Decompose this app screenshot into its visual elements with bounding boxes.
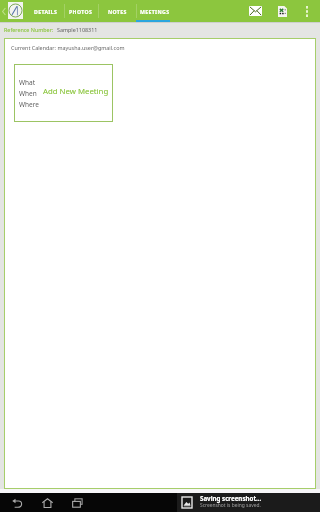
button[interactable]: Back bbox=[0, 0, 8, 22]
staticText: Reference Number: bbox=[4, 26, 54, 33]
staticText: Current Calendar: mayusha.user@gmail.com bbox=[11, 44, 125, 51]
staticText: Sample1108311 bbox=[57, 26, 98, 33]
staticText: NOTES bbox=[108, 8, 127, 15]
staticText: Where bbox=[19, 100, 39, 109]
button[interactable]: Add New Meeting bbox=[43, 86, 109, 97]
staticText: MEETINGS bbox=[140, 8, 170, 15]
button[interactable]: MEETINGS bbox=[136, 0, 174, 22]
staticText: When bbox=[19, 89, 37, 98]
button[interactable]: Home bbox=[37, 493, 57, 512]
button[interactable]: Back bbox=[7, 493, 27, 512]
button[interactable]: App logo bbox=[8, 2, 23, 19]
staticText: PHOTOS bbox=[69, 8, 93, 15]
button[interactable]: NOTES bbox=[98, 0, 136, 22]
button[interactable]: PHOTOS bbox=[64, 0, 98, 22]
button[interactable]: Export spreadsheet bbox=[271, 0, 294, 22]
button[interactable]: DETAILS bbox=[27, 0, 64, 22]
button[interactable]: Email bbox=[240, 0, 271, 22]
staticText: DETAILS bbox=[34, 8, 58, 15]
button[interactable]: More options bbox=[294, 0, 320, 22]
staticText: Screenshot is being saved. bbox=[200, 502, 261, 509]
staticText: What bbox=[19, 78, 36, 87]
button[interactable]: Saving screenshot… bbox=[177, 493, 320, 512]
button[interactable]: Recent apps bbox=[67, 493, 87, 512]
staticText: Saving screenshot… bbox=[200, 494, 262, 502]
